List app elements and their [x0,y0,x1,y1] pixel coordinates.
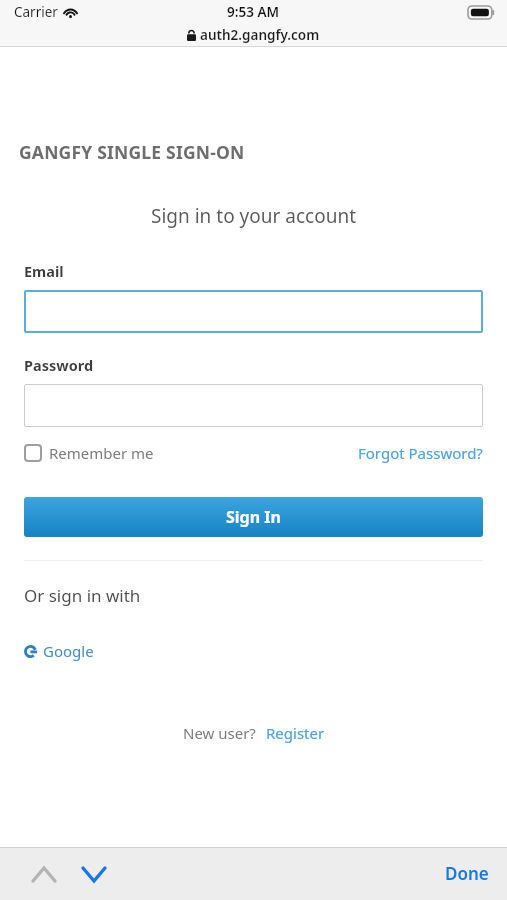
button[interactable] [24,384,483,427]
staticText: New user? [183,723,256,743]
staticText: Or sign in with [24,584,141,607]
staticText: Sign In [226,506,281,528]
staticText: Sign in to your account [0,203,507,229]
button[interactable]: Remember me [24,443,154,463]
staticText: Google [43,641,94,661]
staticText: 9:53 AM [227,3,280,21]
staticText: GANGFY SINGLE SIGN-ON [19,140,245,164]
button[interactable] [24,290,483,333]
staticText: Done [445,862,489,885]
staticText: auth2.gangfy.com [200,26,320,44]
button[interactable]: Register [266,723,325,743]
button[interactable]: Previous field [22,852,66,896]
button[interactable]: Done [445,862,489,885]
button[interactable]: Forgot Password? [358,443,483,463]
staticText: Email [24,261,64,281]
staticText: Register [266,723,325,743]
staticText: Forgot Password? [358,443,483,463]
button[interactable]: Google [24,641,94,661]
button[interactable]: Next field [72,852,116,896]
button[interactable]: Sign In [24,497,483,537]
staticText: Password [24,355,94,375]
staticText: Carrier [14,3,58,21]
staticText: Remember me [49,443,154,463]
